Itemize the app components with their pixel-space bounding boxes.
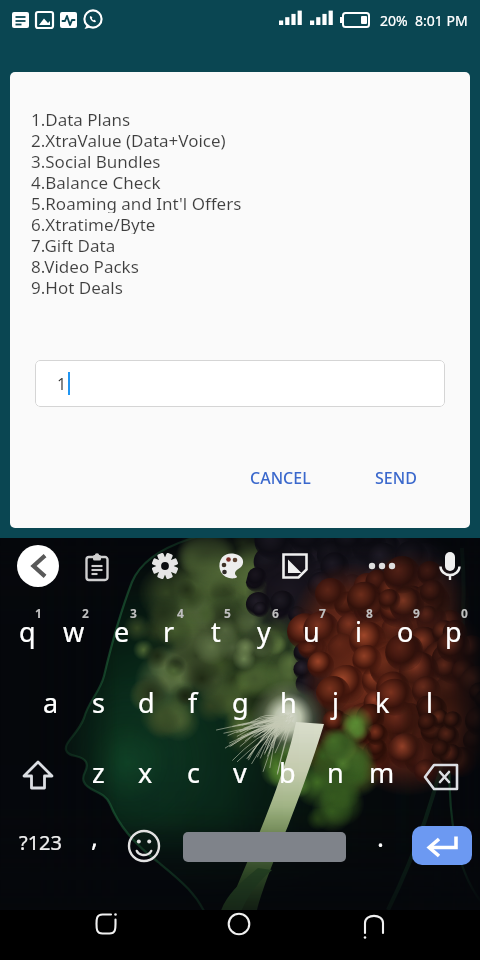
staticText: q: [19, 613, 36, 650]
staticText: 1: [35, 605, 42, 621]
staticText: d: [138, 684, 155, 721]
staticText: h: [280, 684, 297, 721]
staticText: 6.Xtratime/Byte: [31, 213, 156, 234]
staticText: CANCEL: [250, 467, 311, 489]
staticText: t: [211, 613, 221, 650]
staticText: r: [163, 613, 175, 650]
button[interactable]: v: [216, 744, 264, 800]
button[interactable]: Space: [183, 832, 346, 862]
staticText: f: [188, 684, 198, 721]
button[interactable]: Clipboard: [77, 546, 117, 586]
button[interactable]: h: [264, 674, 312, 730]
button[interactable]: 1: [35, 360, 445, 407]
staticText: 20%: [380, 11, 408, 30]
button[interactable]: Stickers: [275, 546, 315, 586]
staticText: 8: [366, 605, 373, 621]
staticText: 2: [82, 605, 89, 621]
button[interactable]: 7: [287, 596, 335, 656]
button[interactable]: CANCEL: [239, 460, 322, 496]
button[interactable]: Voice input: [430, 546, 470, 586]
button[interactable]: Back: [74, 910, 138, 960]
button[interactable]: m: [358, 744, 406, 800]
staticText: o: [397, 613, 414, 650]
staticText: s: [92, 684, 105, 721]
staticText: v: [233, 754, 247, 791]
staticText: z: [92, 754, 105, 791]
button[interactable]: More: [362, 546, 402, 586]
staticText: .: [377, 819, 384, 854]
staticText: e: [114, 613, 130, 650]
button[interactable]: d: [122, 674, 170, 730]
button[interactable]: ,: [72, 819, 116, 865]
button[interactable]: 6: [240, 596, 288, 656]
staticText: b: [279, 754, 296, 791]
button[interactable]: 0: [429, 596, 477, 656]
button[interactable]: .: [358, 819, 402, 865]
staticText: g: [232, 684, 249, 721]
button[interactable]: 9: [381, 596, 429, 656]
staticText: ,: [91, 819, 98, 854]
staticText: 8:01 PM: [415, 11, 468, 30]
button[interactable]: 4: [145, 596, 193, 656]
button[interactable]: Home: [207, 910, 271, 960]
staticText: 8.Video Packs: [31, 255, 139, 276]
button[interactable]: s: [74, 674, 122, 730]
staticText: w: [63, 613, 85, 650]
button[interactable]: z: [74, 744, 122, 800]
staticText: 0: [461, 605, 468, 621]
button[interactable]: 5: [192, 596, 240, 656]
button[interactable]: j: [311, 674, 359, 730]
staticText: j: [332, 684, 339, 721]
staticText: y: [257, 613, 271, 650]
staticText: 5.Roaming and Int'l Offers: [31, 192, 242, 213]
staticText: SEND: [375, 467, 417, 489]
button[interactable]: Back: [17, 545, 59, 587]
staticText: 2.XtraValue (Data+Voice): [31, 129, 226, 150]
button[interactable]: Enter: [412, 826, 472, 865]
staticText: 5: [224, 605, 231, 621]
button[interactable]: 2: [50, 596, 98, 656]
staticText: 6: [272, 605, 279, 621]
staticText: 3: [130, 605, 137, 621]
staticText: 9: [413, 605, 420, 621]
staticText: x: [138, 754, 153, 791]
staticText: 4.Balance Check: [31, 171, 161, 192]
button[interactable]: SEND: [364, 460, 428, 496]
button[interactable]: f: [169, 674, 217, 730]
button[interactable]: Backspace: [417, 749, 465, 805]
staticText: c: [187, 754, 200, 791]
button[interactable]: 8: [334, 596, 382, 656]
button[interactable]: Recents: [342, 910, 406, 960]
button[interactable]: l: [405, 674, 453, 730]
staticText: 4: [177, 605, 184, 621]
staticText: n: [327, 754, 344, 791]
staticText: 7: [319, 605, 326, 621]
staticText: a: [43, 684, 59, 721]
staticText: p: [445, 613, 462, 650]
staticText: 9.Hot Deals: [31, 276, 123, 297]
staticText: l: [426, 684, 433, 721]
button[interactable]: Theme: [211, 546, 251, 586]
staticText: 1.Data Plans: [31, 108, 131, 129]
button[interactable]: Settings: [145, 546, 185, 586]
staticText: 1: [57, 373, 67, 395]
button[interactable]: x: [121, 744, 169, 800]
button[interactable]: a: [27, 674, 75, 730]
staticText: i: [355, 613, 362, 650]
staticText: u: [303, 613, 320, 650]
staticText: 7.Gift Data: [31, 234, 116, 255]
button[interactable]: k: [358, 674, 406, 730]
button[interactable]: c: [169, 744, 217, 800]
staticText: 3.Social Bundles: [31, 150, 161, 171]
staticText: m: [369, 754, 395, 791]
staticText: ?123: [19, 829, 62, 856]
button[interactable]: Emoji: [122, 824, 166, 868]
button[interactable]: n: [311, 744, 359, 800]
button[interactable]: 3: [98, 596, 146, 656]
button[interactable]: 1: [3, 596, 51, 656]
button[interactable]: Shift: [14, 748, 62, 804]
button[interactable]: b: [263, 744, 311, 800]
button[interactable]: g: [216, 674, 264, 730]
staticText: k: [375, 684, 390, 721]
button[interactable]: ?123: [6, 819, 70, 865]
